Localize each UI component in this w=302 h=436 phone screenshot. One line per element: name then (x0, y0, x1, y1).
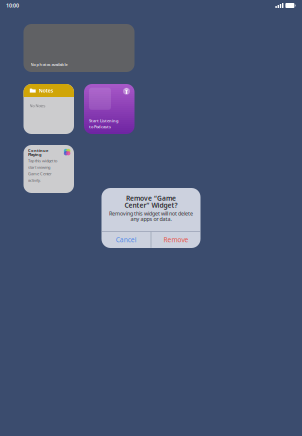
staticText: Start Listening (89, 118, 119, 123)
button[interactable]: No photos available (23, 24, 134, 72)
button[interactable]: Start Listening (84, 84, 134, 134)
staticText: any apps or data. (130, 215, 171, 223)
staticText: to Podcasts (89, 124, 111, 129)
staticText: Removing this widget will not delete (109, 210, 193, 217)
button[interactable]: Continue (23, 145, 74, 193)
button[interactable]: Notes (23, 84, 74, 134)
staticText: No Notes (29, 103, 45, 108)
staticText: No photos available (30, 62, 67, 67)
staticText: activity. (28, 178, 41, 183)
staticText: Tap this widget to (28, 158, 57, 163)
staticText: Notes (38, 87, 53, 94)
staticText: Continue (28, 148, 48, 153)
staticText: 10:00 (6, 2, 19, 9)
staticText: Remove “Game (126, 194, 176, 203)
staticText: Cancel (116, 235, 137, 244)
staticText: Center” Widget? (124, 201, 177, 210)
staticText: Game Center (28, 171, 52, 176)
staticText: start viewing (28, 165, 50, 170)
button[interactable]: Cancel (101, 232, 151, 248)
button[interactable]: Remove (151, 232, 200, 248)
staticText: Remove (163, 235, 188, 244)
staticText: Playing (28, 152, 42, 157)
